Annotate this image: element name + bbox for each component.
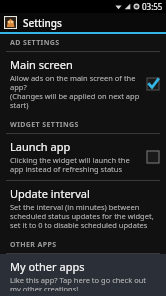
staticText: WIDGET SETTINGS [10,120,79,130]
button[interactable]: My other apps [0,254,166,296]
staticText: Launch app [10,139,71,154]
staticText: OTHER APPS [10,240,57,250]
staticText: Update interval [10,186,90,201]
staticText: Set the interval (in minutes) between sc… [10,202,156,231]
staticText: My other apps [10,259,85,274]
staticText: AD SETTINGS [10,38,60,48]
staticText: 03:55 [142,1,163,12]
staticText: Allow ads on the main screen of the app?… [10,73,140,111]
button[interactable]: Toggle [146,150,160,164]
button[interactable]: Toggle [146,77,160,91]
staticText: Main screen [10,57,73,72]
button[interactable]: Update interval [0,181,166,236]
button[interactable]: Main screen [0,52,166,116]
staticText: Like this app? Tap here to go check out … [10,275,156,291]
button[interactable]: Launch app [0,134,166,180]
staticText: Settings [23,16,62,30]
staticText: Clicking the widget will launch the app … [10,155,140,175]
